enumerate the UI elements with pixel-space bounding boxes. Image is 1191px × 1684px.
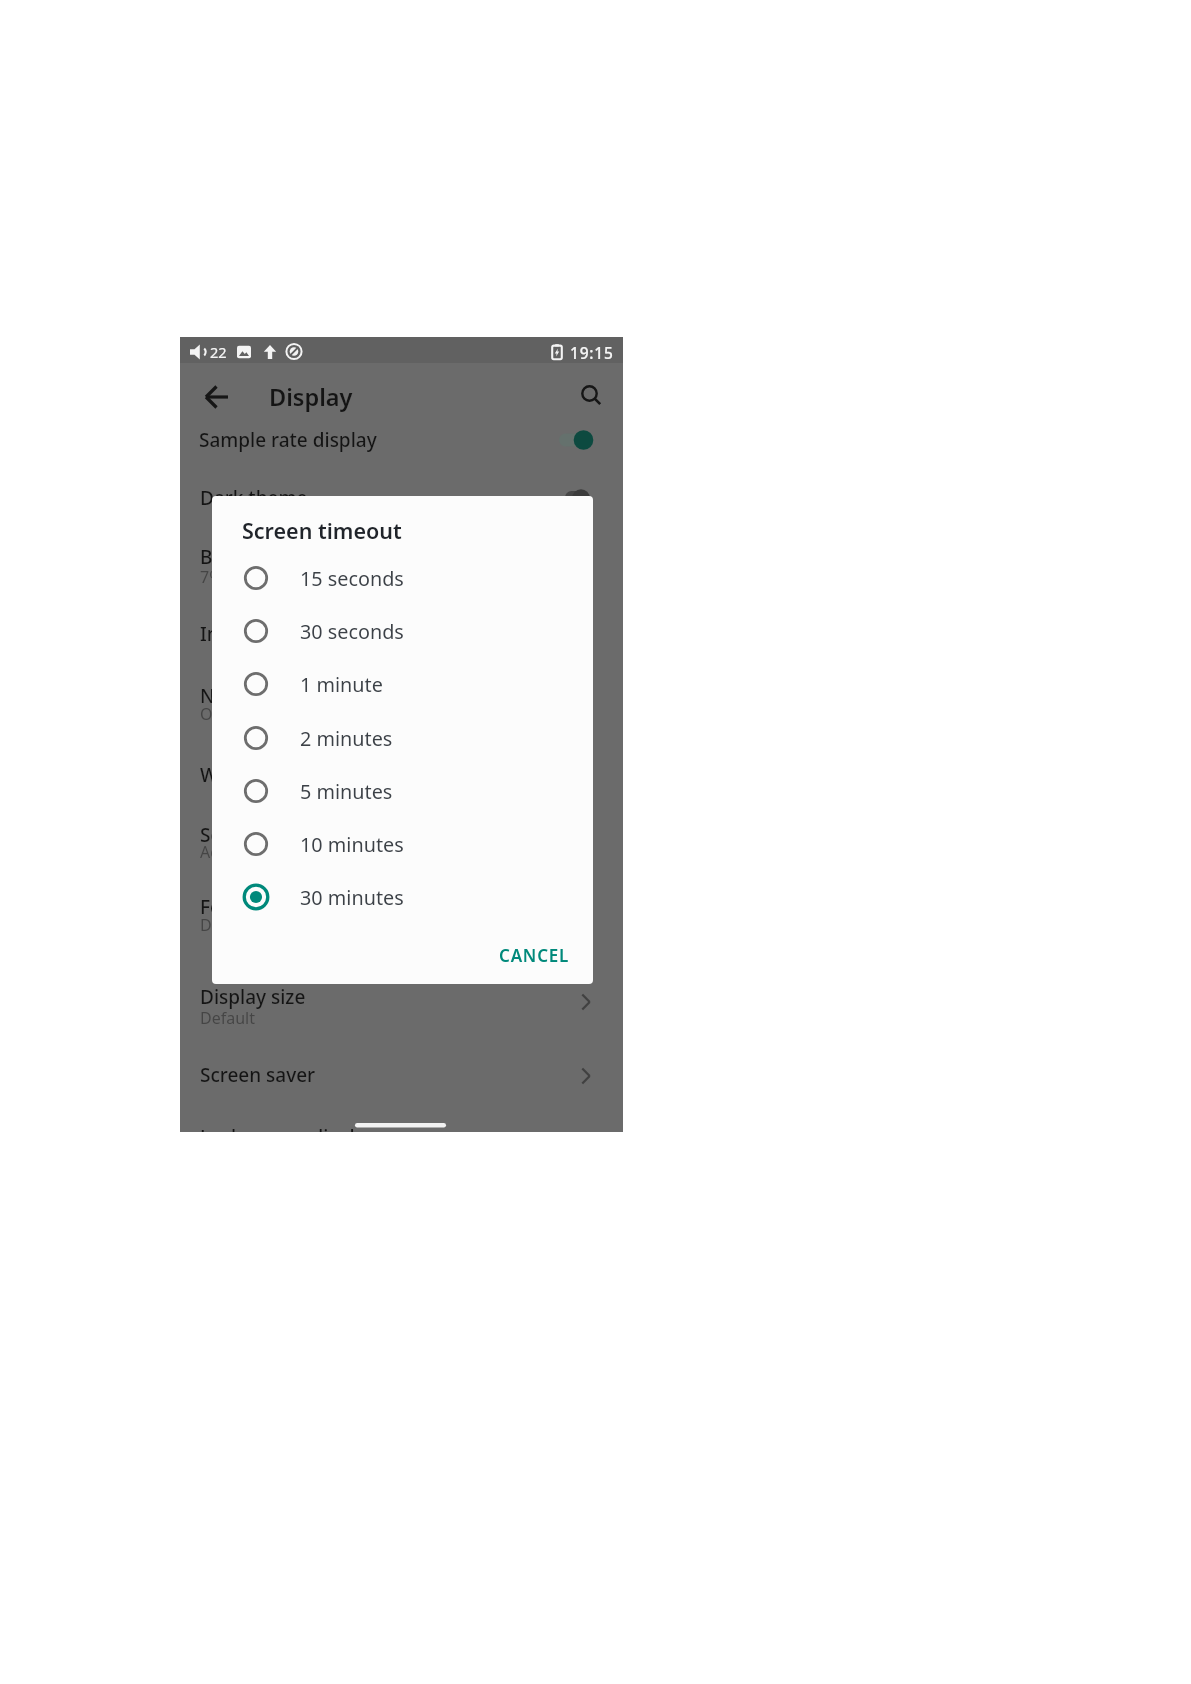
staticText: 1 minute [300, 671, 383, 698]
button[interactable] [197, 377, 237, 417]
button[interactable]: 10 minutes [212, 820, 593, 868]
staticText: Display size [200, 984, 306, 1010]
staticText: 5 minutes [300, 778, 393, 805]
staticText: Inversion [200, 621, 286, 647]
staticText: Screen saver [200, 1062, 316, 1088]
staticText: 15 seconds [300, 565, 404, 592]
button[interactable] [180, 477, 623, 515]
staticText: 30 seconds [300, 618, 404, 645]
staticText: 30 minutes [300, 884, 404, 911]
staticText: Brightness level [200, 544, 345, 570]
button[interactable]: 5 minutes [212, 767, 593, 815]
staticText: 7% [200, 566, 223, 588]
button[interactable] [180, 1107, 623, 1132]
staticText: Dark theme [200, 485, 308, 511]
button[interactable] [572, 376, 612, 416]
staticText: Sample rate display [199, 427, 377, 453]
button[interactable]: 15 seconds [212, 554, 593, 602]
staticText: CANCEL [499, 944, 570, 967]
staticText: 2 minutes [300, 725, 393, 752]
button[interactable]: 2 minutes [212, 714, 593, 762]
staticText: Wallpaper [200, 762, 292, 788]
staticText: Screen attention [200, 822, 351, 848]
staticText: Font size [200, 894, 281, 920]
staticText: Off [200, 703, 224, 725]
staticText: Default [200, 914, 255, 936]
staticText: 19:15 [570, 342, 614, 363]
staticText: Display [269, 381, 353, 413]
staticText: Night Light [200, 683, 303, 709]
staticText: Screen timeout [242, 516, 402, 545]
button[interactable]: Display size [180, 977, 623, 1039]
button[interactable]: 30 minutes [212, 873, 593, 921]
staticText: 22 [210, 342, 227, 362]
staticText: 10 minutes [300, 831, 404, 858]
button[interactable]: 30 seconds [212, 607, 593, 655]
button[interactable]: Sample rate display [180, 417, 623, 463]
staticText: Default [200, 1007, 255, 1029]
staticText: Adaptive [200, 841, 266, 863]
button[interactable]: 1 minute [212, 660, 593, 708]
button[interactable]: Screen saver [180, 1053, 623, 1099]
staticText: Lock screen display [200, 1124, 376, 1132]
button[interactable]: CANCEL [487, 937, 582, 973]
